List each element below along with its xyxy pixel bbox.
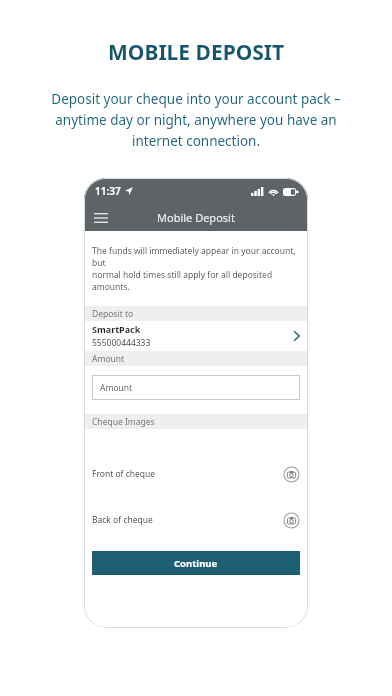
staticText: Deposit to (92, 308, 134, 320)
staticText: Cheque Images (92, 416, 155, 428)
staticText: Back of cheque (92, 514, 153, 526)
staticText: 555000444333 (92, 337, 151, 349)
other: Capture Front of cheque (283, 466, 300, 483)
staticText: Mobile Deposit (157, 210, 235, 225)
staticText: Continue (174, 557, 218, 570)
staticText: The funds will immediately appear in you… (92, 245, 300, 293)
button[interactable]: Continue (92, 551, 300, 575)
button[interactable]: Amount (92, 375, 300, 400)
button[interactable]: Back of cheque (84, 509, 308, 531)
button[interactable]: Menu (91, 208, 111, 228)
staticText: 11:37 (95, 184, 121, 198)
staticText: Deposit your cheque into your account pa… (51, 90, 341, 150)
staticText: Amount (92, 353, 125, 365)
button[interactable]: SmartPack (84, 321, 308, 351)
other: Capture Back of cheque (283, 512, 300, 529)
staticText: MOBILE DEPOSIT (108, 38, 285, 67)
staticText: Front of cheque (92, 468, 156, 480)
button[interactable]: Front of cheque (84, 463, 308, 485)
staticText: SmartPack (92, 323, 141, 335)
staticText: Amount (100, 382, 133, 394)
